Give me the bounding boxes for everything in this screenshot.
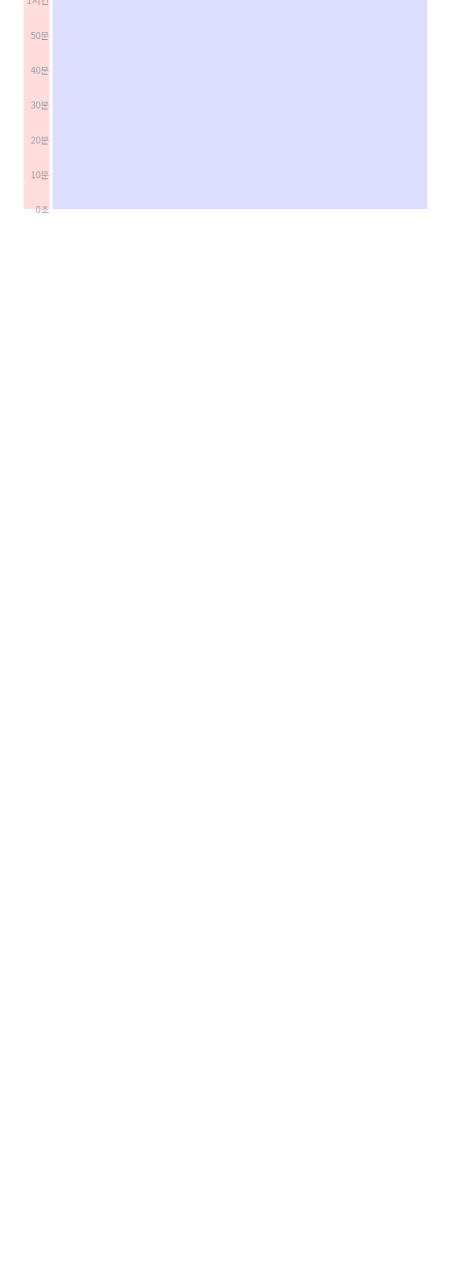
staticText: 1시간: [26, 0, 49, 7]
staticText: 20분: [30, 133, 49, 146]
staticText: 0초: [35, 202, 49, 216]
staticText: 30분: [30, 98, 49, 111]
staticText: 40분: [30, 63, 49, 76]
staticText: 50분: [30, 28, 49, 42]
staticText: 10분: [30, 167, 49, 181]
